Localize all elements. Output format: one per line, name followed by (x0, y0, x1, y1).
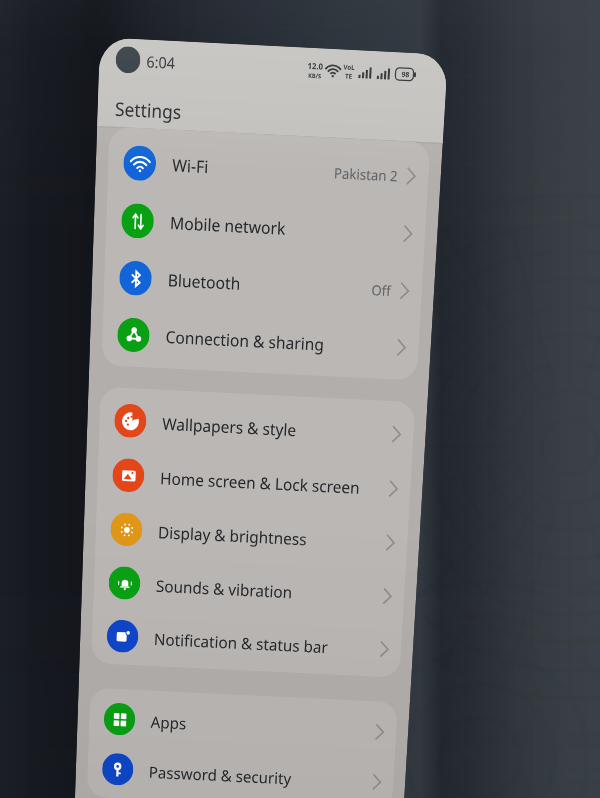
button[interactable]: Notification & status bar (91, 608, 403, 676)
staticText: Connection & sharing (165, 325, 325, 355)
staticText: KB/S (308, 71, 322, 79)
button[interactable]: Home screen & Lock screen (97, 447, 412, 516)
staticText: Display & brightness (158, 521, 308, 549)
staticText: TE (345, 72, 352, 81)
staticText: 12.0 (307, 60, 323, 72)
staticText: Apps (150, 711, 187, 733)
button[interactable]: Mobile network (105, 190, 427, 263)
button[interactable]: Apps (88, 693, 398, 757)
staticText: Password & security (148, 761, 292, 788)
staticText: Mobile network (170, 211, 286, 239)
button[interactable]: Connection & sharing (101, 305, 420, 377)
staticText: Home screen & Lock screen (160, 466, 360, 498)
button[interactable]: Wi-Fi (107, 132, 430, 206)
staticText: Off (371, 280, 392, 300)
staticText: Pakistan 2 (333, 163, 399, 186)
button[interactable]: Wallpapers & style (98, 392, 415, 462)
staticText: 6:04 (146, 51, 176, 73)
button[interactable]: Password & security (87, 743, 395, 798)
staticText: 98 (401, 69, 410, 79)
staticText: Sounds & vibration (156, 574, 293, 602)
staticText: Wi-Fi (172, 153, 209, 177)
button[interactable]: Display & brightness (95, 501, 409, 570)
staticText: VoL (343, 63, 355, 72)
staticText: Wallpapers & style (162, 412, 298, 440)
staticText: Bluetooth (167, 268, 241, 294)
button[interactable]: Sounds & vibration (93, 555, 406, 623)
staticText: Settings (115, 96, 182, 125)
button[interactable]: Bluetooth (103, 247, 424, 320)
staticText: Notification & status bar (154, 627, 329, 657)
